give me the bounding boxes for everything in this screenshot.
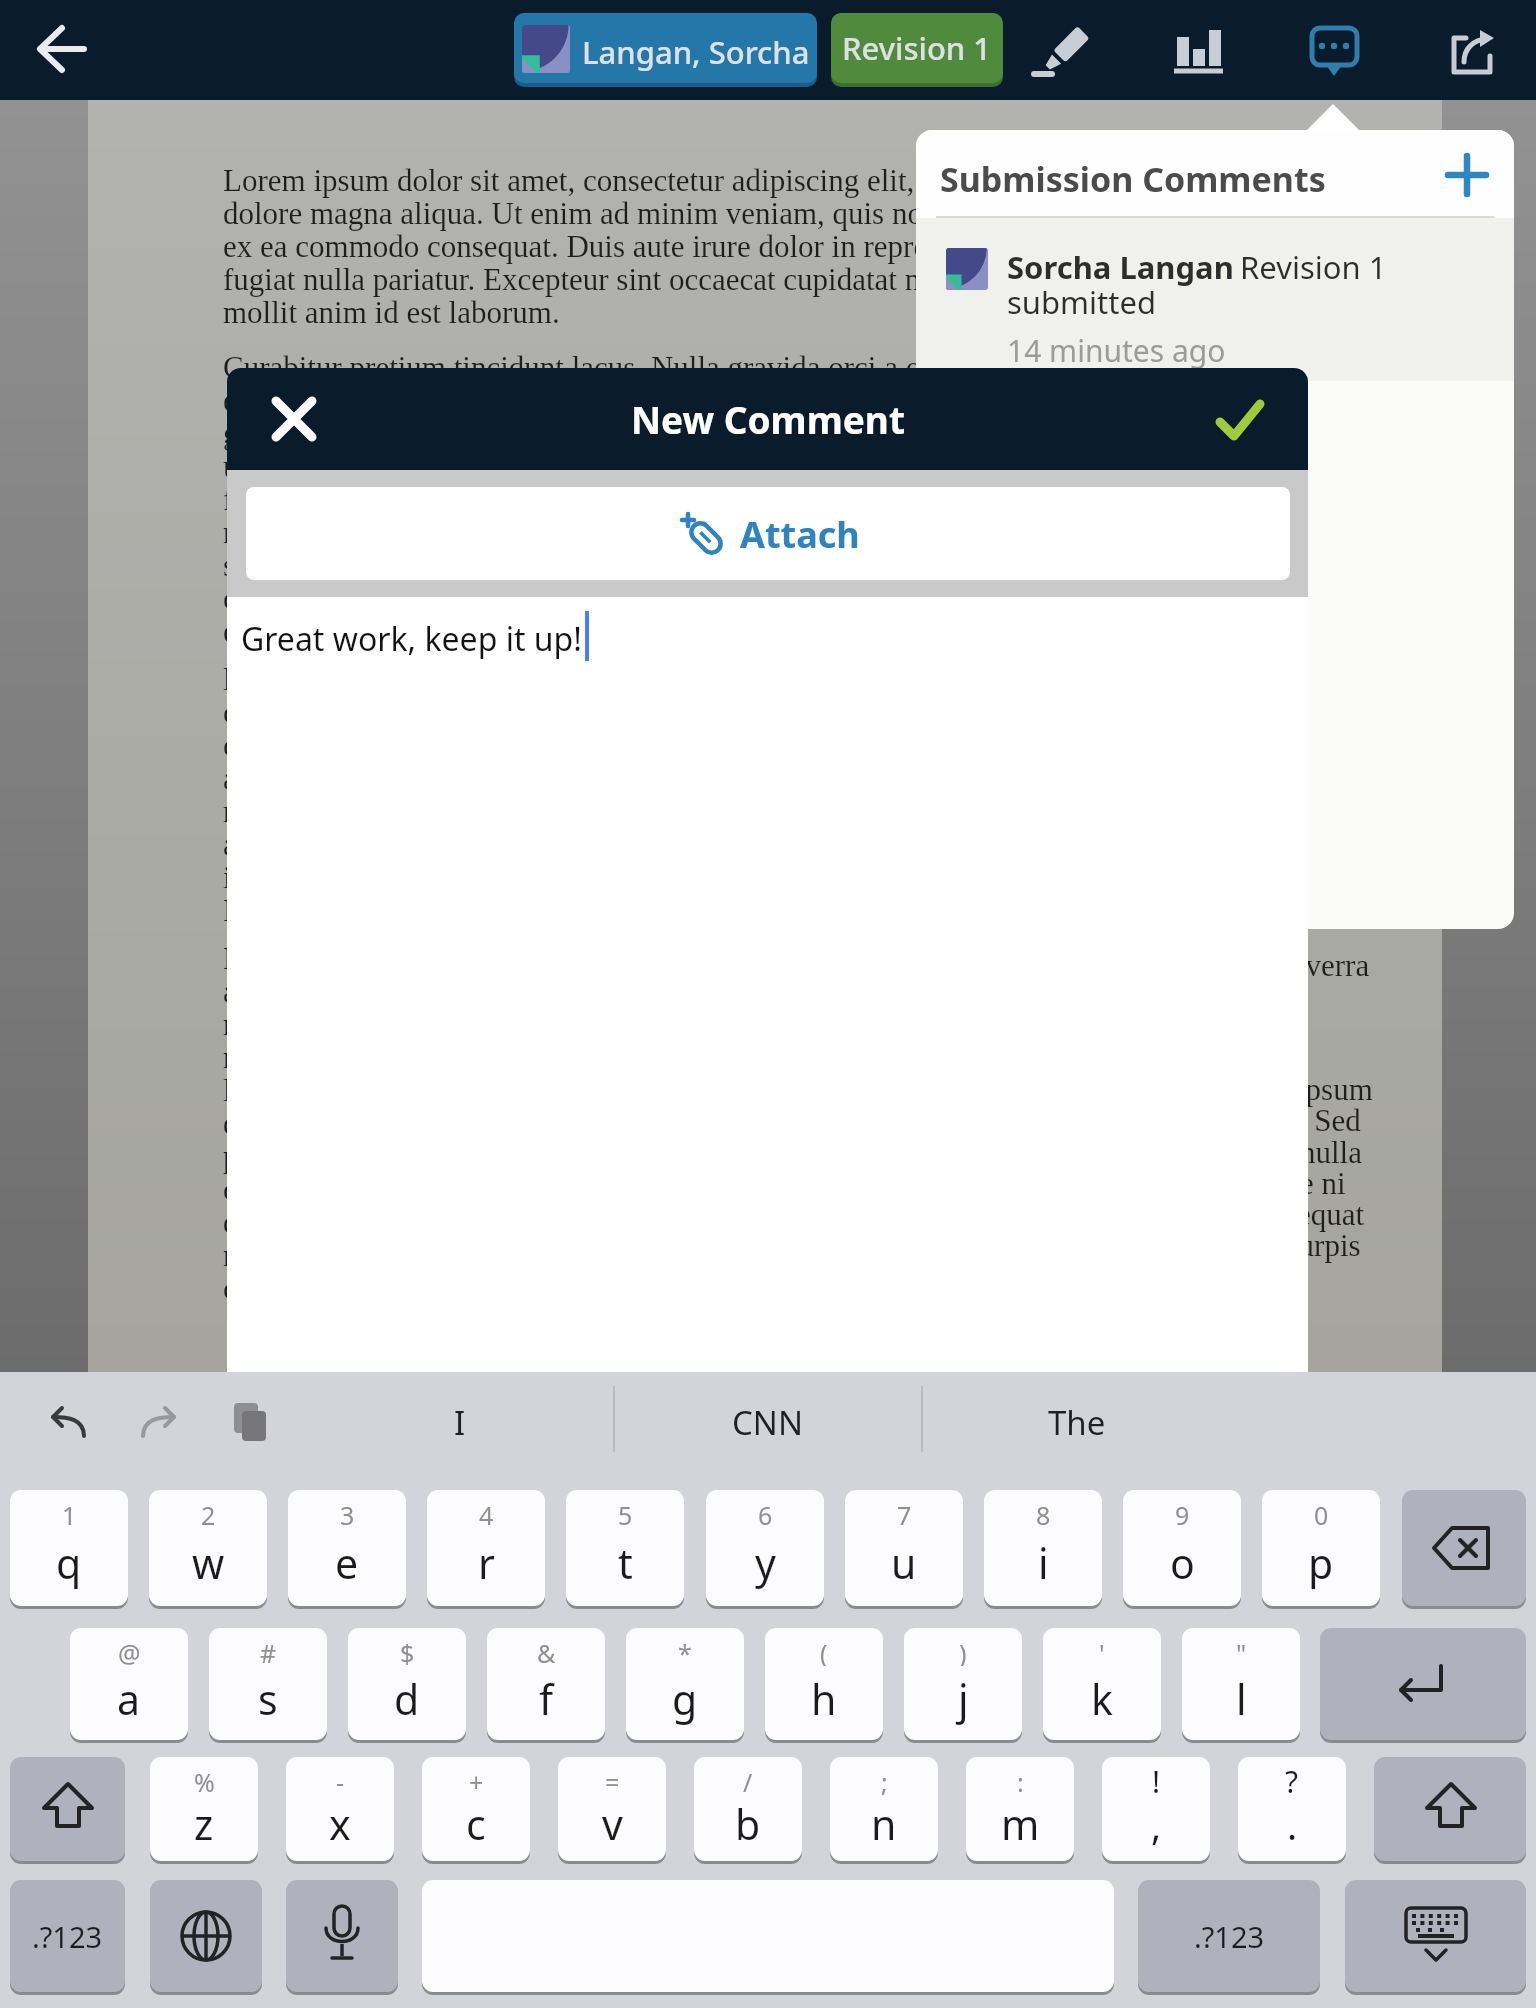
staticText: 14 minutes ago (1007, 330, 1226, 371)
button[interactable] (626, 1628, 744, 1740)
button[interactable] (209, 1628, 327, 1740)
staticText: Great work, keep it up! (241, 617, 582, 661)
staticText: h (811, 1671, 837, 1727)
staticText: l (1236, 1671, 1247, 1727)
button[interactable] (1262, 1490, 1380, 1606)
button[interactable]: The (923, 1390, 1230, 1454)
button[interactable] (1102, 1757, 1210, 1861)
button[interactable] (1023, 10, 1103, 90)
button[interactable] (966, 1757, 1074, 1861)
button[interactable]: CNN (615, 1390, 921, 1454)
staticText: 1 (62, 1498, 77, 1528)
button[interactable]: .?123 (1138, 1880, 1320, 1992)
button[interactable] (706, 1490, 824, 1606)
button[interactable] (427, 1490, 545, 1606)
button[interactable] (70, 1628, 188, 1740)
button[interactable] (1374, 1757, 1526, 1861)
staticText: nulla (1300, 1135, 1362, 1169)
staticText: ipsum (1297, 1072, 1373, 1106)
staticText: metus. Sed aliquet risus a tortor. Integ… (223, 1040, 1200, 1074)
staticText: - (336, 1765, 345, 1795)
staticText: condimentum velit sit amet, feugiat lect… (223, 728, 1442, 762)
button[interactable] (1402, 1490, 1526, 1606)
staticText: Lorem ipsum dolor sit amet, consectetur … (223, 163, 1442, 197)
button[interactable] (1212, 392, 1268, 448)
staticText: t (618, 1535, 633, 1591)
staticText: q (56, 1535, 82, 1591)
button[interactable] (266, 391, 322, 447)
button[interactable] (1182, 1628, 1300, 1740)
button[interactable] (286, 1757, 394, 1861)
staticText: est eros bibendum elit, nec luctus magna… (223, 383, 1442, 417)
staticText: Curabitur pretium tincidunt lacus. Nulla… (223, 350, 1442, 384)
staticText: " (1236, 1636, 1247, 1666)
staticText: = (605, 1765, 620, 1795)
button[interactable] (1123, 1490, 1241, 1606)
staticText: p (1308, 1535, 1334, 1591)
staticText: curabitur sodales ligula in libero. Sed … (223, 1172, 1190, 1206)
button[interactable] (138, 1400, 182, 1444)
button[interactable] (1320, 1628, 1526, 1740)
button[interactable] (1432, 10, 1512, 90)
button[interactable] (487, 1628, 605, 1740)
staticText: New Comment (631, 394, 905, 444)
staticText: i (1038, 1535, 1049, 1591)
button[interactable] (1444, 152, 1490, 198)
button[interactable] (10, 1757, 125, 1861)
staticText: x (329, 1796, 351, 1852)
staticText: Submission Comments (940, 156, 1326, 202)
staticText: mollit anim id est laborum. (223, 295, 560, 329)
staticText: Revision 1 (1240, 246, 1387, 288)
button[interactable] (149, 1490, 267, 1606)
button[interactable] (150, 1757, 258, 1861)
staticText: + (469, 1765, 484, 1795)
button[interactable] (0, 0, 120, 100)
staticText: Revision 1 (842, 27, 992, 69)
button[interactable] (765, 1628, 883, 1740)
button[interactable] (1345, 1880, 1526, 1992)
staticText: d (394, 1671, 420, 1727)
button[interactable] (984, 1490, 1102, 1606)
staticText: curabitur tortor. Pellentesque nibh. Aen… (223, 1271, 1025, 1305)
button[interactable] (227, 597, 1308, 1372)
button[interactable] (1157, 10, 1237, 90)
button[interactable] (288, 1490, 406, 1606)
staticText: dignissim quis, sollicitudin id, nibh. F… (223, 1106, 1257, 1140)
staticText: 0 (1314, 1498, 1329, 1528)
button[interactable]: I (306, 1390, 613, 1454)
button[interactable] (1238, 1757, 1346, 1861)
button[interactable] (845, 1490, 963, 1606)
button[interactable] (150, 1880, 262, 1992)
button[interactable] (286, 1880, 398, 1992)
button[interactable] (558, 1757, 666, 1861)
staticText: z (194, 1796, 214, 1852)
button[interactable] (348, 1628, 466, 1740)
button[interactable]: .?123 (10, 1880, 125, 1992)
staticText: The (1048, 1400, 1106, 1445)
staticText: ( (820, 1636, 828, 1666)
staticText: o (1170, 1535, 1195, 1591)
staticText: eu, feugiat in, orci. In hac habitasse p… (223, 614, 867, 648)
button[interactable] (566, 1490, 684, 1606)
staticText: augue. Vestibulum tincidunt malesuada te… (223, 974, 1234, 1008)
button[interactable] (694, 1757, 802, 1861)
button[interactable] (422, 1757, 530, 1861)
button[interactable] (10, 1490, 128, 1606)
button[interactable] (904, 1628, 1022, 1740)
button[interactable] (1043, 1628, 1161, 1740)
button[interactable] (831, 13, 1003, 87)
button[interactable] (830, 1757, 938, 1861)
button[interactable] (226, 1398, 274, 1446)
button[interactable] (48, 1400, 92, 1444)
button[interactable] (1294, 10, 1374, 90)
button[interactable]: Attach (246, 487, 1290, 580)
staticText: j (958, 1671, 969, 1727)
staticText: a verra (1284, 948, 1370, 982)
staticText: t Sed (1298, 1103, 1361, 1137)
staticText: u (891, 1535, 917, 1591)
button[interactable] (514, 13, 817, 87)
staticText: ex ea commodo consequat. Duis aute irure… (223, 229, 1442, 263)
button[interactable] (916, 218, 1514, 381)
staticText: risus quam dignissim justo, ut pellentes… (223, 794, 1442, 828)
